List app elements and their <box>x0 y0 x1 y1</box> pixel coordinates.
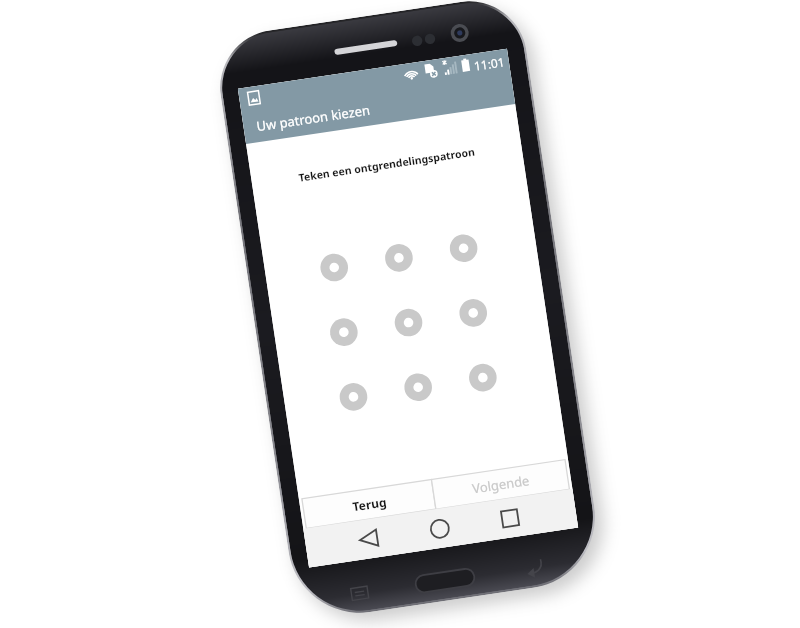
button[interactable]: Terug <box>302 479 436 528</box>
staticText: Volgende <box>471 471 531 497</box>
button[interactable]: Home <box>413 505 466 551</box>
staticText: Teken een ontgrendelingspatroon <box>298 145 476 185</box>
staticText: Terug <box>351 493 387 514</box>
staticText: 11:01 <box>473 53 506 74</box>
staticText: Uw patroon kiezen <box>255 100 372 135</box>
button[interactable]: Recent apps <box>483 495 537 541</box>
button[interactable]: Back <box>342 516 395 562</box>
button[interactable]: Volgende <box>431 460 569 509</box>
